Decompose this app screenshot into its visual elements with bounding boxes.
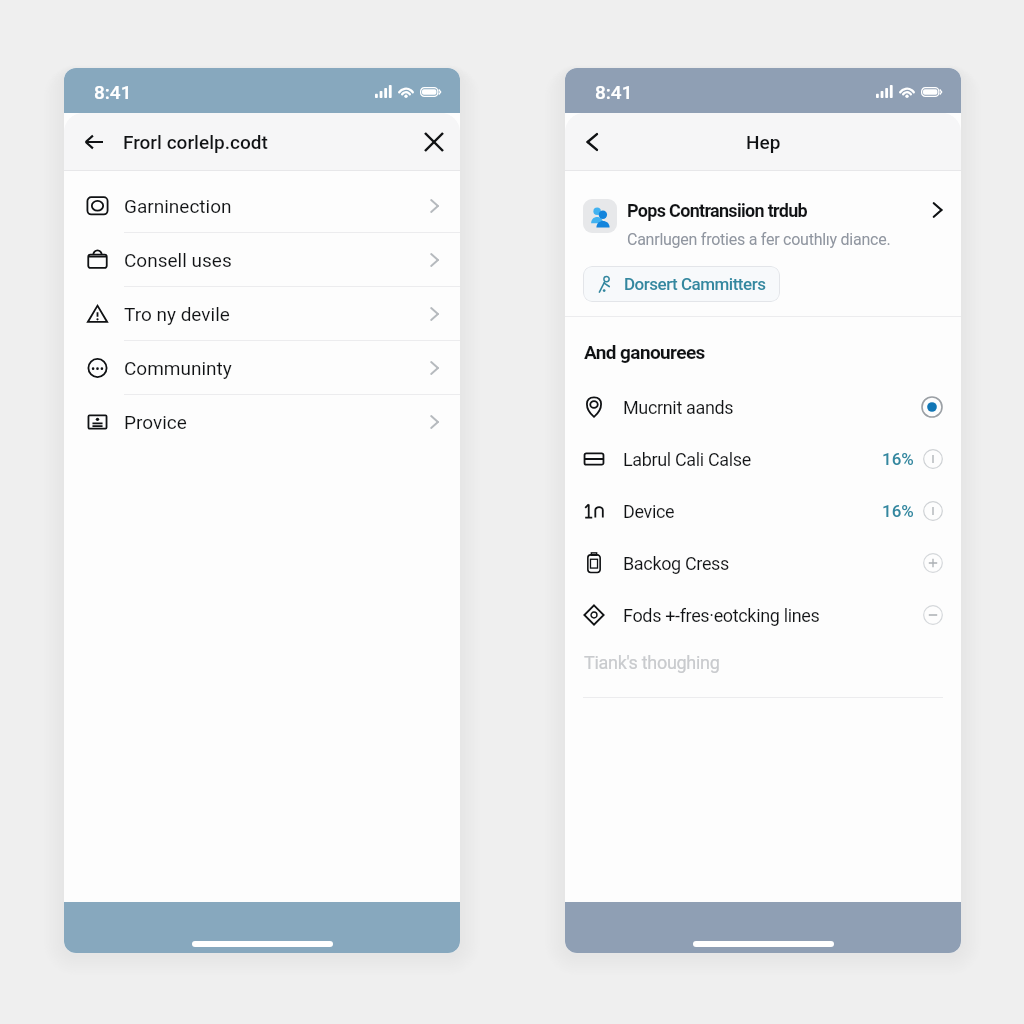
button[interactable]: Close: [415, 123, 453, 161]
button[interactable]: Garninection: [64, 179, 460, 233]
button[interactable]: Communinty: [64, 341, 460, 395]
button[interactable]: Back: [75, 123, 113, 161]
staticText: Pops Contransiion trdub: [627, 200, 808, 221]
staticText: Canrlugen froties a fer couthlıy diance.: [627, 230, 891, 249]
staticText: Dorsert Cammitters: [624, 274, 766, 294]
staticText: And ganourees: [584, 341, 705, 363]
staticText: 8:41: [595, 81, 633, 103]
staticText: Hep: [746, 131, 781, 153]
staticText: Labrul Cali Calse: [623, 449, 751, 470]
staticText: Garninection: [124, 195, 232, 217]
staticText: Consell uses: [124, 249, 232, 271]
staticText: Backog Cress: [623, 553, 729, 574]
button[interactable]: Consell uses: [64, 233, 460, 287]
button[interactable]: Mucrnit aands: [565, 381, 961, 433]
staticText: 8:41: [94, 81, 132, 103]
staticText: Mucrnit aands: [623, 397, 734, 418]
button[interactable]: Pops Contransiion trdub: [565, 171, 961, 249]
staticText: Tiank's thoughing: [584, 652, 720, 673]
staticText: Fods +-fres·eotcking lines: [623, 605, 820, 626]
button[interactable]: Fods +-fres·eotcking lines: [565, 589, 961, 641]
button[interactable]: Tro ny devile: [64, 287, 460, 341]
staticText: 16%: [882, 449, 914, 469]
staticText: 16%: [882, 501, 914, 521]
button[interactable]: Provice: [64, 395, 460, 448]
button[interactable]: Device: [565, 485, 961, 537]
staticText: Frorl corlelp.codt: [123, 131, 268, 153]
staticText: Device: [623, 501, 675, 522]
button[interactable]: Dorsert Cammitters: [583, 266, 780, 302]
button[interactable]: Back: [574, 123, 612, 161]
staticText: Communinty: [124, 357, 232, 379]
button[interactable]: Labrul Cali Calse: [565, 433, 961, 485]
button[interactable]: Backog Cress: [565, 537, 961, 589]
staticText: Tro ny devile: [124, 303, 230, 325]
staticText: Provice: [124, 411, 187, 433]
